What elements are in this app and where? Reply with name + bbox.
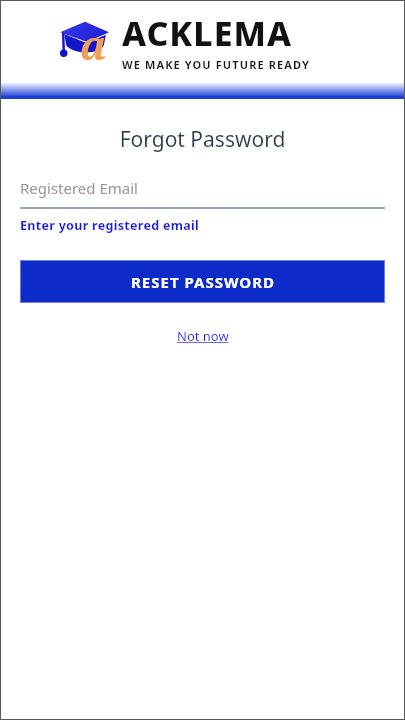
button[interactable]: RESET PASSWORD xyxy=(20,260,385,303)
staticText: WE MAKE YOU FUTURE READY xyxy=(122,57,310,72)
staticText: a xyxy=(80,17,107,71)
staticText: Not now xyxy=(177,327,229,345)
button[interactable]: Not now xyxy=(173,325,233,347)
staticText: Registered Email xyxy=(20,178,138,198)
staticText: Enter your registered email xyxy=(20,217,200,234)
staticText: Forgot Password xyxy=(20,125,385,154)
staticText: RESET PASSWORD xyxy=(131,272,275,292)
staticText: ACKLEMA xyxy=(122,10,293,56)
button[interactable]: Registered Email xyxy=(20,178,385,209)
